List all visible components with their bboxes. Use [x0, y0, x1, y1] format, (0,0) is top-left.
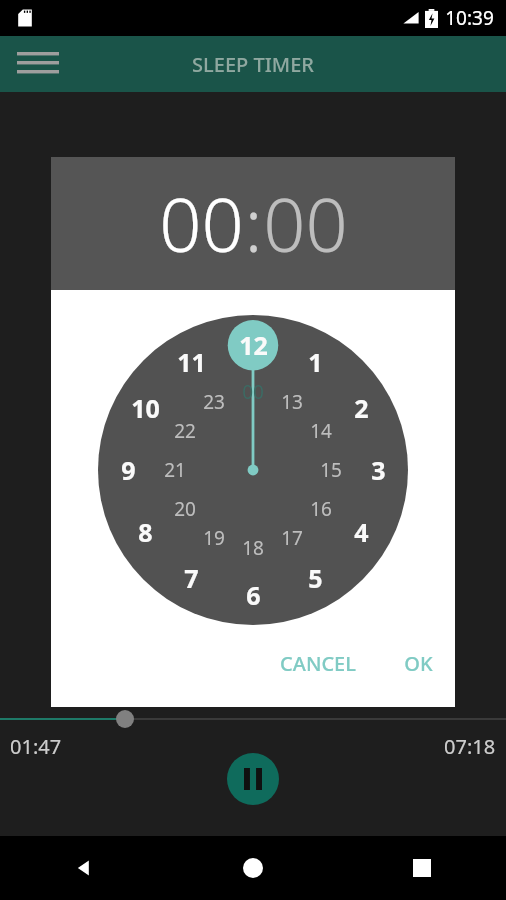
staticText: 4 — [354, 515, 369, 549]
staticText: 00 — [242, 379, 264, 405]
staticText: 8 — [138, 515, 153, 549]
staticText: OK — [404, 650, 433, 677]
button[interactable]: Home — [168, 836, 337, 900]
staticText: 23 — [203, 389, 225, 415]
button[interactable]: 10 — [123, 386, 167, 430]
button[interactable]: Back — [0, 836, 168, 900]
button[interactable]: Menu — [14, 40, 62, 88]
staticText: 6 — [246, 578, 261, 612]
staticText: 01:47 — [10, 733, 62, 760]
button[interactable]: 17 — [270, 516, 314, 560]
button[interactable]: 23 — [192, 380, 236, 424]
button[interactable]: 00 — [231, 370, 275, 414]
staticText: 14 — [310, 418, 332, 444]
button[interactable]: 2 — [339, 386, 383, 430]
staticText: SLEEP TIMER — [192, 51, 314, 78]
staticText: 00 — [263, 173, 348, 274]
button[interactable]: 11 — [169, 340, 213, 384]
button[interactable]: 22 — [163, 409, 207, 453]
staticText: 2 — [354, 391, 369, 425]
staticText: 1 — [308, 345, 323, 379]
staticText: 20 — [174, 496, 196, 522]
button[interactable]: 15 — [309, 448, 353, 492]
button[interactable]: 16 — [299, 487, 343, 531]
staticText: 15 — [320, 457, 342, 483]
staticText: 19 — [203, 525, 225, 551]
staticText: 22 — [174, 418, 196, 444]
button[interactable]: 3 — [356, 448, 400, 492]
button[interactable]: 13 — [270, 380, 314, 424]
staticText: 13 — [281, 389, 303, 415]
button[interactable]: 00 — [263, 173, 348, 274]
button[interactable]: 5 — [293, 556, 337, 600]
staticText: 17 — [281, 525, 303, 551]
staticText: 10 — [131, 391, 160, 425]
staticText: 21 — [164, 457, 186, 483]
staticText: 07:18 — [444, 733, 496, 760]
staticText: 16 — [310, 496, 332, 522]
button[interactable]: 14 — [299, 409, 343, 453]
staticText: 10:39 — [445, 5, 494, 31]
staticText: CANCEL — [280, 650, 356, 677]
button[interactable]: 12 — [231, 323, 275, 367]
button[interactable]: 19 — [192, 516, 236, 560]
staticText: 11 — [177, 345, 206, 379]
staticText: 7 — [184, 561, 199, 595]
button[interactable]: 4 — [339, 510, 383, 554]
button[interactable]: CANCEL — [268, 642, 368, 685]
button[interactable]: 20 — [163, 487, 207, 531]
button[interactable]: OK — [392, 642, 445, 685]
button[interactable]: Recent apps — [337, 836, 506, 900]
button[interactable]: 00 — [159, 173, 244, 274]
staticText: 18 — [242, 535, 264, 561]
staticText: 5 — [308, 561, 323, 595]
button[interactable]: Pause — [227, 753, 279, 805]
staticText: 3 — [371, 453, 386, 487]
button[interactable]: 18 — [231, 526, 275, 570]
staticText: : — [244, 173, 263, 274]
button[interactable]: 9 — [106, 448, 150, 492]
staticText: 12 — [239, 328, 268, 362]
staticText: 9 — [121, 453, 136, 487]
button[interactable]: 1 — [293, 340, 337, 384]
staticText: 00 — [159, 173, 244, 274]
button[interactable]: 21 — [153, 448, 197, 492]
button[interactable]: 6 — [231, 573, 275, 617]
button[interactable]: 7 — [169, 556, 213, 600]
button[interactable]: 8 — [123, 510, 167, 554]
